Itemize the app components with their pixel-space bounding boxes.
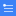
button[interactable] [4,5,13,8]
button[interactable] [4,8,13,11]
button[interactable] [4,11,13,14]
